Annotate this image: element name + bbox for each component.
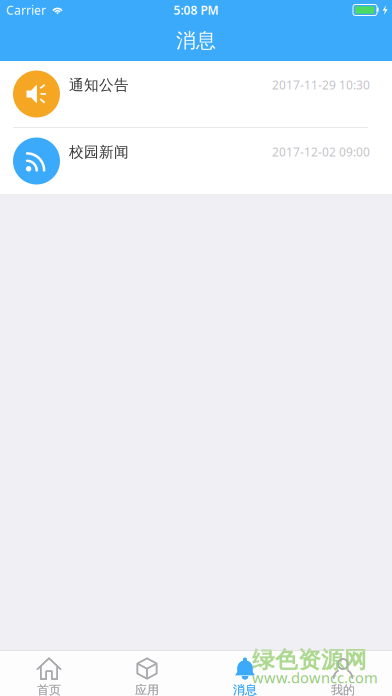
staticText: 首页 bbox=[37, 683, 61, 696]
staticText: 消息 bbox=[233, 683, 257, 696]
staticText: 2017-11-29 10:30 bbox=[272, 77, 370, 93]
button[interactable]: 应用 bbox=[98, 649, 196, 696]
staticText: 通知公告 bbox=[69, 76, 129, 94]
staticText: 我的 bbox=[331, 683, 355, 696]
staticText: 2017-12-02 09:00 bbox=[272, 144, 370, 160]
staticText: www.downcc.com bbox=[252, 668, 378, 687]
button[interactable]: 首页 bbox=[0, 649, 98, 696]
button[interactable]: 校园新闻 bbox=[0, 128, 392, 194]
button[interactable]: 我的 bbox=[294, 649, 392, 696]
staticText: 我的 bbox=[331, 683, 355, 696]
staticText: 消息 bbox=[176, 28, 216, 53]
staticText: 应用 bbox=[135, 683, 159, 696]
staticText: 首页 bbox=[37, 683, 61, 696]
staticText: Carrier bbox=[6, 2, 46, 18]
button[interactable]: 首页 bbox=[0, 649, 98, 696]
button[interactable]: 通知公告 bbox=[0, 61, 392, 128]
staticText: 校园新闻 bbox=[69, 143, 129, 161]
staticText: 绿色资源网 bbox=[252, 646, 367, 674]
staticText: 5:08 PM bbox=[173, 2, 218, 18]
button[interactable]: 消息 bbox=[196, 649, 294, 696]
button[interactable]: 消息 bbox=[196, 649, 294, 696]
staticText: 消息 bbox=[233, 683, 257, 696]
button[interactable]: 应用 bbox=[98, 649, 196, 696]
button[interactable]: 我的 bbox=[294, 649, 392, 696]
staticText: 应用 bbox=[135, 683, 159, 696]
